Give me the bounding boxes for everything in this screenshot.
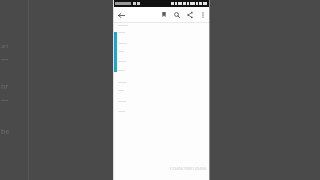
button[interactable]: Back — [116, 10, 127, 21]
button[interactable]: Bookmark — [159, 10, 169, 20]
button[interactable]: Search — [172, 10, 182, 20]
button[interactable]: More options — [198, 10, 208, 20]
staticText: 1234567890123456 — [169, 166, 206, 171]
staticText: nr — [1, 82, 9, 92]
button[interactable]: Share — [185, 10, 195, 20]
staticText: art — [1, 42, 9, 49]
staticText: be — [1, 127, 10, 137]
